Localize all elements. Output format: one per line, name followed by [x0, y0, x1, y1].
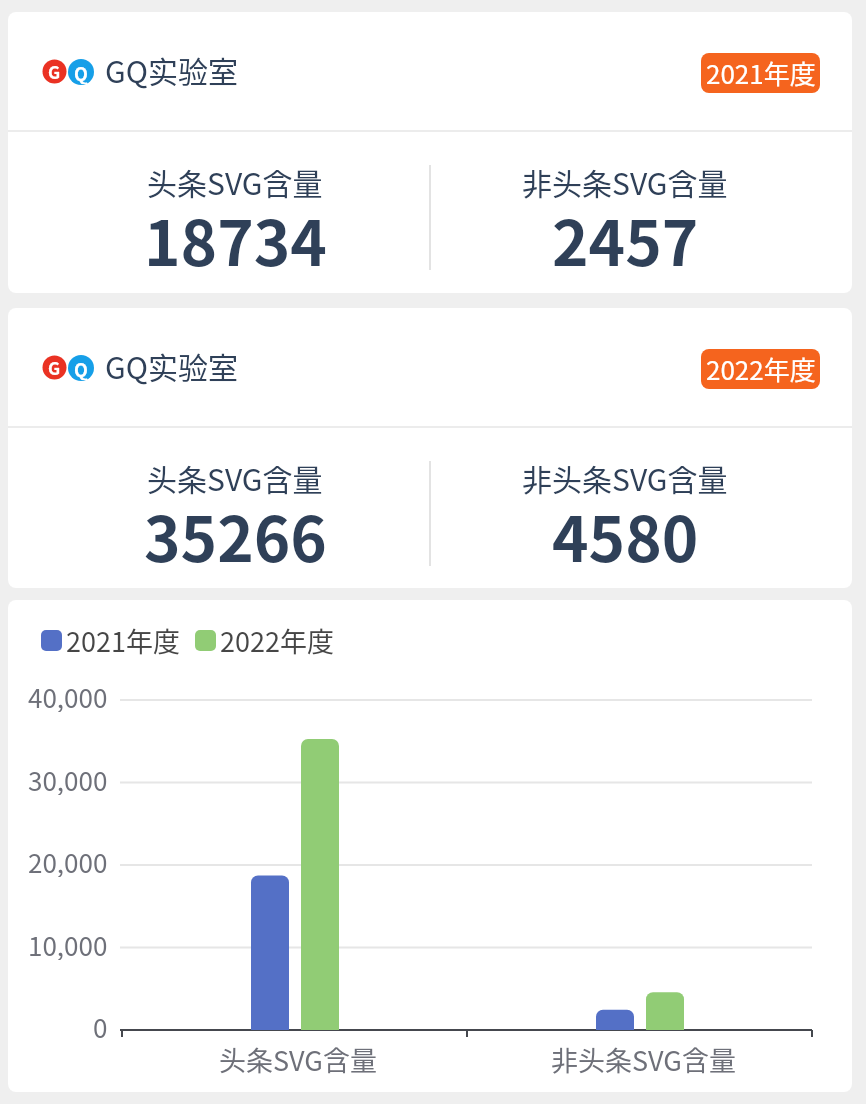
staticText: 10,000	[28, 926, 108, 960]
staticText: 40,000	[28, 678, 108, 712]
staticText: 2022年度	[220, 621, 334, 660]
staticText: 非头条SVG含量	[522, 160, 728, 203]
staticText: GQ实验室	[105, 48, 238, 91]
staticText: Q	[74, 60, 88, 84]
staticText: 2022年度	[706, 350, 816, 388]
button[interactable]: 2022年度	[195, 621, 334, 660]
staticText: 35266	[144, 490, 327, 580]
staticText: G	[48, 59, 61, 84]
button[interactable]: G	[8, 12, 852, 293]
staticText: 18734	[144, 194, 327, 284]
button[interactable]: 2021年度	[41, 621, 180, 660]
staticText: 头条SVG含量	[147, 456, 323, 499]
staticText: 头条SVG含量	[147, 160, 323, 203]
staticText: 20,000	[28, 843, 108, 877]
button[interactable]: G	[8, 308, 852, 588]
button[interactable]: 2022年度	[701, 349, 820, 389]
staticText: GQ实验室	[105, 344, 238, 387]
staticText: 4580	[552, 490, 699, 580]
staticText: 2021年度	[706, 54, 816, 92]
staticText: 非头条SVG含量	[522, 456, 728, 499]
staticText: 非头条SVG含量	[551, 1040, 736, 1076]
staticText: 0	[93, 1008, 108, 1042]
staticText: 头条SVG含量	[219, 1040, 377, 1076]
staticText: G	[48, 355, 61, 380]
staticText: 2457	[552, 194, 699, 284]
staticText: Q	[74, 356, 88, 380]
button[interactable]: 2021年度	[701, 53, 820, 93]
staticText: 2021年度	[66, 621, 180, 660]
staticText: 30,000	[28, 761, 108, 795]
